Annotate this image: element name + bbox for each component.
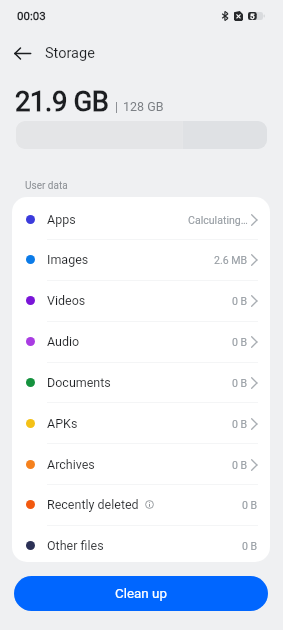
button[interactable]: Back [9,40,35,66]
staticText: Other files [47,538,104,553]
button[interactable]: Clean up [14,576,268,611]
staticText: 128 GB [123,99,164,114]
button[interactable]: Videos [12,280,270,321]
button[interactable]: Recently deleted [12,484,270,525]
staticText: 0 B [232,336,248,348]
button[interactable]: Documents [12,362,270,403]
staticText: APKs [47,416,78,431]
staticText: 0 B [232,459,248,471]
staticText: Archives [47,457,95,472]
staticText: User data [25,180,68,192]
staticText: 5 [250,12,255,20]
staticText: | [115,99,119,114]
button[interactable]: Other files [12,525,270,562]
staticText: 0 B [232,295,248,307]
staticText: Images [47,252,89,267]
staticText: Clean up [115,586,167,602]
staticText: 0 B [242,540,258,552]
staticText: 00:03 [17,9,46,22]
staticText: Recently deleted [47,497,139,512]
button[interactable]: Apps [12,199,270,240]
button[interactable]: Archives [12,444,270,485]
staticText: 2.6 MB [214,254,248,266]
staticText: 0 B [232,418,248,430]
staticText: Calculating… [188,214,248,226]
button[interactable]: Images [12,239,270,280]
staticText: Documents [47,375,111,390]
staticText: Apps [47,212,76,227]
staticText: Videos [47,293,86,308]
staticText: Audio [47,334,80,349]
button[interactable]: Audio [12,321,270,362]
staticText: 21.9 GB [15,85,109,117]
staticText: 0 B [242,499,258,511]
staticText: Storage [45,45,95,62]
staticText: 0 B [232,377,248,389]
button[interactable]: APKs [12,403,270,444]
